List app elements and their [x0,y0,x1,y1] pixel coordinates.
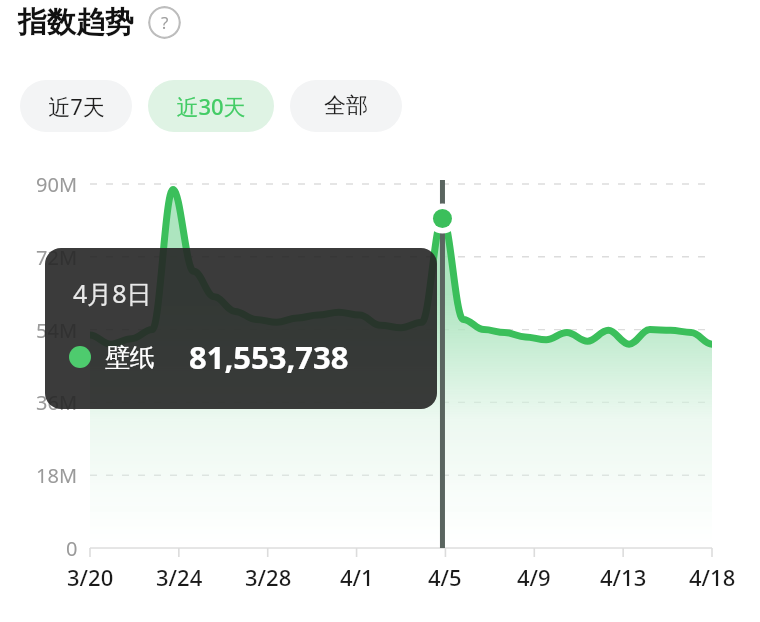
staticText: 3/28 [245,562,292,592]
staticText: 4/9 [517,562,551,592]
staticText: 近7天 [48,91,105,121]
staticText: 18M [36,462,78,489]
staticText: 4/18 [689,562,736,592]
staticText: 全部 [324,92,368,120]
staticText: 0 [66,535,78,562]
staticText: 54M [36,317,78,344]
staticText: 4/13 [600,562,647,592]
button[interactable]: Help [148,6,181,39]
staticText: 4月8日 [73,276,152,310]
staticText: 近30天 [176,91,246,121]
button[interactable]: 近30天 [148,80,274,132]
staticText: 81,553,738 [189,336,349,378]
staticText: 3/24 [156,562,203,592]
staticText: 4/1 [340,562,374,592]
staticText: ? [161,11,169,34]
button[interactable]: 全部 [290,80,402,132]
staticText: 72M [36,244,78,271]
staticText: 指数趋势 [18,4,134,41]
staticText: 36M [36,389,78,416]
staticText: 90M [36,171,78,198]
staticText: 3/20 [67,562,114,592]
staticText: 壁纸 [105,342,155,373]
button[interactable]: 近7天 [20,80,132,132]
staticText: 4/5 [428,562,462,592]
